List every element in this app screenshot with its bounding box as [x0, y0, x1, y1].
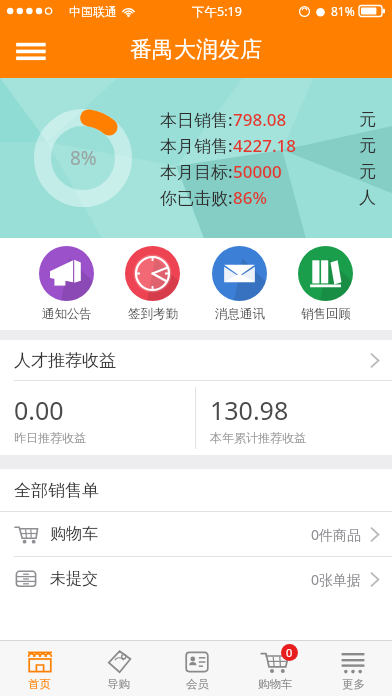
staticText: 更多 [342, 677, 365, 691]
button[interactable]: Menu [14, 32, 50, 68]
staticText: 4227.18 [233, 134, 296, 157]
staticText: 人 [359, 187, 376, 208]
staticText: 元 [359, 161, 376, 182]
staticText: 0件商品 [311, 525, 362, 544]
staticText: 未提交 [50, 569, 98, 589]
staticText: 你已击败: [160, 186, 233, 209]
staticText: 0.00 [14, 393, 64, 427]
staticText: 番禺大润发店 [130, 36, 262, 64]
staticText: 销售回顾 [301, 306, 351, 322]
staticText: 130.98 [210, 393, 289, 427]
staticText: 购物车 [50, 524, 98, 544]
staticText: 798.08 [233, 108, 287, 131]
staticText: 元 [359, 135, 376, 156]
button[interactable]: 会员 [158, 647, 236, 691]
button[interactable]: 签到考勤 [125, 246, 180, 322]
staticText: 全部销售单 [14, 480, 99, 501]
staticText: 导购 [107, 677, 130, 691]
staticText: 元 [359, 109, 376, 130]
button[interactable]: 购物车 [0, 512, 392, 556]
button[interactable]: 更多 [314, 647, 392, 691]
staticText: 0张单据 [311, 570, 362, 589]
staticText: 86% [233, 186, 267, 209]
staticText: 50000 [233, 160, 282, 183]
button[interactable]: 未提交 [0, 557, 392, 601]
staticText: 81% [331, 3, 355, 19]
button[interactable]: 销售回顾 [298, 246, 353, 322]
staticText: 消息通讯 [215, 306, 265, 322]
staticText: 8% [70, 145, 97, 171]
staticText: 本日销售: [160, 108, 233, 131]
staticText: 下午5:19 [192, 3, 242, 20]
staticText: 首页 [28, 677, 51, 691]
staticText: 会员 [186, 677, 209, 691]
staticText: 中国联通 [69, 4, 117, 19]
button[interactable]: 通知公告 [39, 246, 94, 322]
button[interactable]: 消息通讯 [212, 246, 267, 322]
button[interactable]: 导购 [79, 647, 158, 691]
staticText: 购物车 [258, 677, 293, 691]
staticText: 人才推荐收益 [14, 350, 116, 371]
staticText: 本月目标: [160, 160, 233, 183]
staticText: 本年累计推荐收益 [210, 430, 306, 445]
staticText: 0 [286, 645, 293, 660]
staticText: 通知公告 [42, 306, 92, 322]
button[interactable]: 首页 [0, 647, 79, 691]
staticText: 本月销售: [160, 134, 233, 157]
staticText: 签到考勤 [128, 306, 178, 322]
staticText: 昨日推荐收益 [14, 430, 86, 445]
button[interactable]: 人才推荐收益 [0, 340, 392, 380]
button[interactable]: 购物车 [236, 647, 314, 691]
